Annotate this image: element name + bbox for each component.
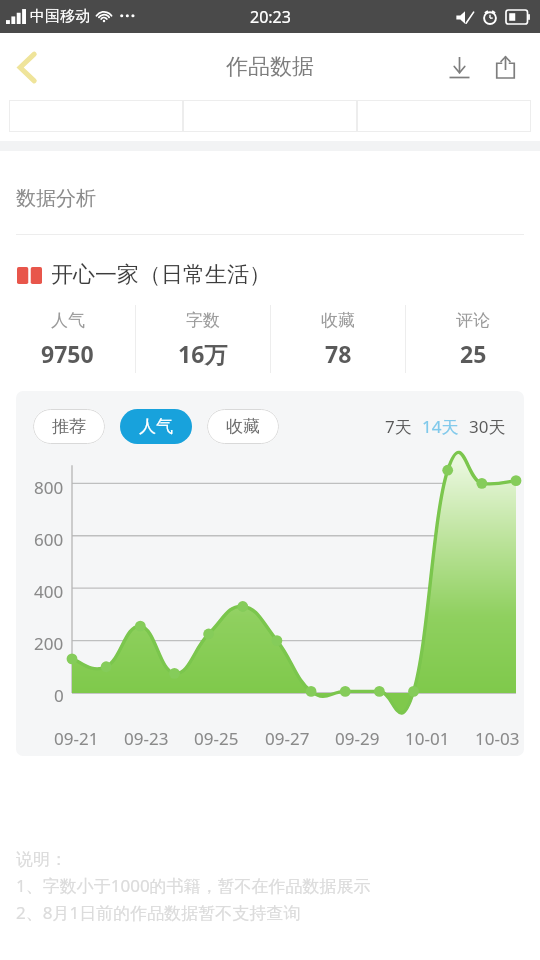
staticText: 7天 bbox=[385, 415, 412, 438]
staticText: 推荐 bbox=[52, 416, 86, 437]
staticText: 9750 bbox=[41, 338, 94, 369]
staticText: 0 bbox=[54, 684, 64, 707]
staticText: 14天 bbox=[422, 415, 459, 438]
staticText: 人气 bbox=[139, 416, 173, 437]
staticText: 09-23 bbox=[124, 727, 169, 750]
button[interactable]: 人气 bbox=[0, 310, 135, 369]
button[interactable]: 评论 bbox=[406, 310, 540, 369]
button[interactable]: Download bbox=[436, 44, 482, 90]
staticText: 78 bbox=[325, 338, 352, 369]
button[interactable]: 收藏 bbox=[271, 310, 405, 369]
staticText: 600 bbox=[34, 528, 64, 551]
button[interactable]: 字数 bbox=[136, 310, 270, 369]
button[interactable]: 收藏 bbox=[207, 409, 279, 444]
staticText: 开心一家（日常生活） bbox=[51, 261, 271, 289]
staticText: 16万 bbox=[178, 338, 228, 369]
staticText: 09-29 bbox=[335, 727, 380, 750]
staticText: 评论 bbox=[456, 310, 490, 331]
staticText: 1、字数小于1000的书籍，暂不在作品数据展示 bbox=[16, 874, 371, 897]
staticText: 中国移动 bbox=[30, 7, 90, 26]
button[interactable]: 推荐 bbox=[33, 409, 105, 444]
staticText: 200 bbox=[34, 632, 64, 655]
staticText: 09-27 bbox=[265, 727, 310, 750]
button[interactable]: Back bbox=[0, 40, 54, 94]
staticText: 数据分析 bbox=[16, 186, 96, 211]
staticText: 人气 bbox=[51, 310, 85, 331]
staticText: 2、8月1日前的作品数据暂不支持查询 bbox=[16, 901, 301, 924]
staticText: 10-03 bbox=[475, 727, 520, 750]
staticText: 400 bbox=[34, 580, 64, 603]
button[interactable]: 人气 bbox=[120, 409, 192, 444]
button[interactable]: Share bbox=[482, 44, 528, 90]
staticText: 作品数据 bbox=[226, 53, 314, 81]
staticText: 20:23 bbox=[250, 6, 291, 28]
staticText: 800 bbox=[34, 476, 64, 499]
staticText: 09-25 bbox=[194, 727, 239, 750]
staticText: 09-21 bbox=[54, 727, 99, 750]
staticText: 10-01 bbox=[405, 727, 450, 750]
staticText: 字数 bbox=[186, 310, 220, 331]
button[interactable]: 7天 bbox=[384, 410, 413, 443]
button[interactable]: 14天 bbox=[421, 410, 460, 443]
staticText: 25 bbox=[460, 338, 487, 369]
button[interactable]: 30天 bbox=[468, 410, 507, 443]
staticText: 收藏 bbox=[226, 416, 260, 437]
staticText: 30天 bbox=[469, 415, 506, 438]
staticText: 收藏 bbox=[321, 310, 355, 331]
staticText: 说明： bbox=[16, 849, 67, 870]
